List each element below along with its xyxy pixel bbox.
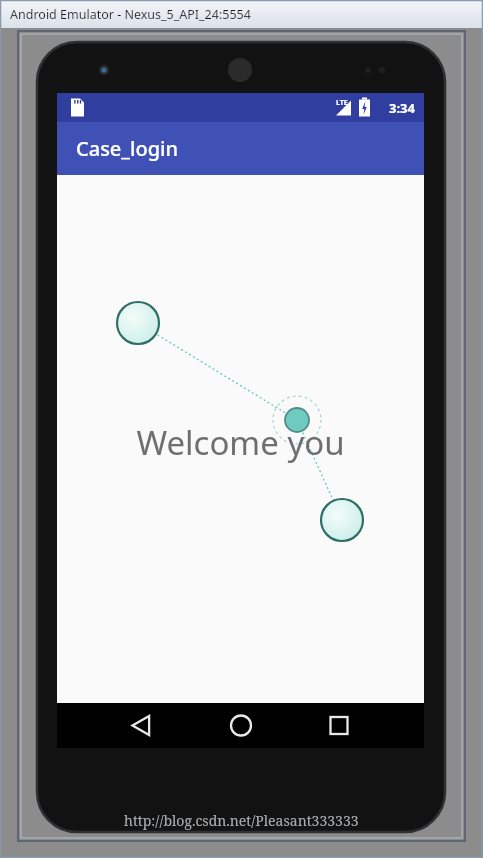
staticText: Android Emulator - Nexus_5_API_24:5554	[10, 6, 251, 23]
button[interactable]: Recent apps	[316, 703, 362, 748]
staticText: 3:34	[389, 99, 415, 117]
button[interactable]: Home	[218, 703, 264, 748]
staticText: http://blog.csdn.net/Pleasant333333	[124, 811, 359, 830]
button[interactable]: Back	[119, 703, 165, 748]
staticText: LTE	[336, 98, 348, 108]
staticText: Case_login	[76, 135, 178, 162]
button[interactable]: Case_login	[57, 122, 424, 175]
staticText: Welcome you	[57, 420, 424, 465]
